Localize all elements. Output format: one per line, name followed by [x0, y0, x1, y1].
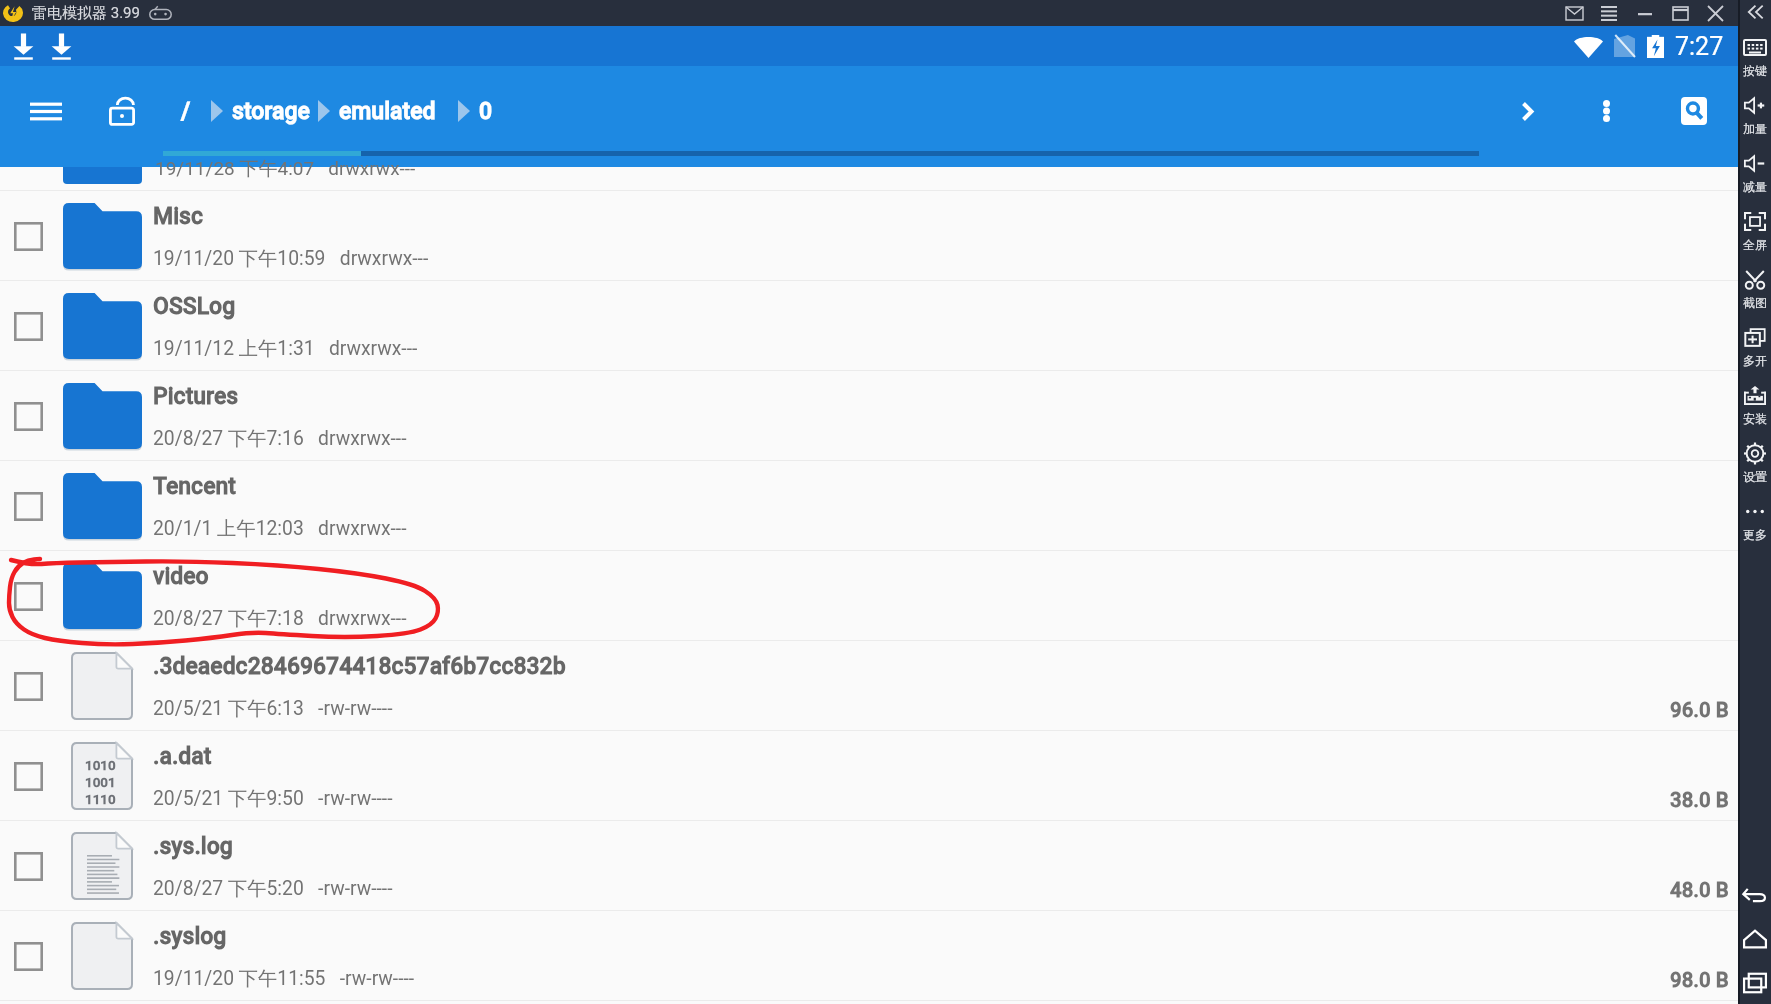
button[interactable]: Search — [1671, 88, 1717, 134]
staticText: 更多 — [1743, 527, 1767, 542]
staticText: emulated — [339, 98, 436, 125]
staticText: OSSLog — [153, 293, 236, 320]
staticText: 加量 — [1743, 121, 1767, 136]
button[interactable]: Menu — [1601, 7, 1617, 20]
staticText: 48.0 B — [1670, 878, 1729, 902]
staticText: 20/1/1 上午12:03 drwxrwx--- — [153, 516, 407, 540]
button[interactable]: 多开 — [1738, 320, 1771, 378]
staticText: 设置 — [1743, 469, 1767, 484]
button[interactable]: 更多 — [1738, 494, 1771, 552]
staticText: 0 — [479, 98, 493, 125]
staticText: / — [181, 98, 191, 125]
staticText: 96.0 B — [1670, 698, 1729, 722]
staticText: 98.0 B — [1670, 968, 1729, 992]
button[interactable]: 1010 — [0, 731, 1738, 821]
button[interactable]: Pictures — [0, 371, 1738, 461]
button[interactable]: Tencent — [0, 461, 1738, 551]
button[interactable]: 加量 — [1738, 88, 1771, 146]
staticText: 19/11/28 下午4:07 drwxrwx--- — [155, 157, 416, 181]
staticText: video — [153, 563, 209, 590]
staticText: 20/8/27 下午7:16 drwxrwx--- — [153, 426, 407, 450]
staticText: Pictures — [153, 383, 239, 410]
staticText: 20/8/27 下午7:18 drwxrwx--- — [153, 606, 407, 630]
button[interactable]: Home — [1742, 928, 1768, 950]
button[interactable]: emulated — [339, 98, 436, 125]
staticText: 1110 — [85, 791, 116, 807]
staticText: 7:27 — [1675, 32, 1724, 61]
button[interactable]: .sys.log — [0, 821, 1738, 911]
button[interactable]: Forward — [1504, 88, 1550, 134]
button[interactable]: Misc — [0, 191, 1738, 281]
staticText: .a.dat — [153, 743, 212, 770]
button[interactable]: Recents — [1742, 972, 1768, 994]
staticText: Misc — [153, 203, 203, 230]
button[interactable]: 按键 — [1738, 30, 1771, 88]
staticText: 20/8/27 下午5:20 -rw-rw---- — [153, 876, 393, 900]
button[interactable]: Unlock — [100, 89, 144, 133]
staticText: .sys.log — [153, 833, 233, 860]
staticText: 20/5/21 下午6:13 -rw-rw---- — [153, 696, 393, 720]
button[interactable]: 减量 — [1738, 146, 1771, 204]
button[interactable]: 安装 — [1738, 378, 1771, 436]
staticText: 雷电模拟器 3.99 — [32, 4, 140, 23]
staticText: 1001 — [85, 774, 116, 790]
button[interactable]: 全屏 — [1738, 204, 1771, 262]
button[interactable]: Back — [1742, 884, 1768, 906]
staticText: 截图 — [1743, 295, 1767, 310]
staticText: Tencent — [153, 473, 236, 500]
button[interactable]: video — [0, 551, 1738, 641]
button[interactable]: Menu — [21, 89, 70, 133]
button[interactable]: 0 — [479, 98, 493, 125]
staticText: 减量 — [1743, 179, 1767, 194]
button[interactable]: Close — [1708, 6, 1723, 21]
staticText: 多开 — [1743, 353, 1767, 368]
button[interactable]: .syslog — [0, 911, 1738, 1001]
button[interactable]: Maximize — [1673, 7, 1688, 20]
staticText: .3deaedc28469674418c57af6b7cc832b — [153, 653, 566, 680]
staticText: storage — [232, 98, 310, 125]
button[interactable]: Messages — [1566, 7, 1583, 20]
staticText: 38.0 B — [1670, 788, 1729, 812]
button[interactable]: .3deaedc28469674418c57af6b7cc832b — [0, 641, 1738, 731]
button[interactable]: Minimize — [1637, 7, 1653, 20]
staticText: 20/5/21 下午9:50 -rw-rw---- — [153, 786, 393, 810]
button[interactable]: / — [181, 98, 191, 125]
button[interactable]: Collapse — [1743, 3, 1767, 21]
staticText: .syslog — [153, 923, 227, 950]
staticText: 19/11/20 下午11:55 -rw-rw---- — [153, 966, 415, 990]
staticText: 按键 — [1743, 63, 1767, 78]
button[interactable]: More options — [1583, 88, 1629, 134]
staticText: 全屏 — [1743, 237, 1767, 252]
staticText: 1010 — [85, 757, 116, 773]
button[interactable]: storage — [232, 98, 310, 125]
button[interactable]: 截图 — [1738, 262, 1771, 320]
button[interactable]: 设置 — [1738, 436, 1771, 494]
button[interactable]: OSSLog — [0, 281, 1738, 371]
staticText: 19/11/12 上午1:31 drwxrwx--- — [153, 336, 418, 360]
staticText: 安装 — [1743, 411, 1767, 426]
staticText: 19/11/20 下午10:59 drwxrwx--- — [153, 246, 429, 270]
